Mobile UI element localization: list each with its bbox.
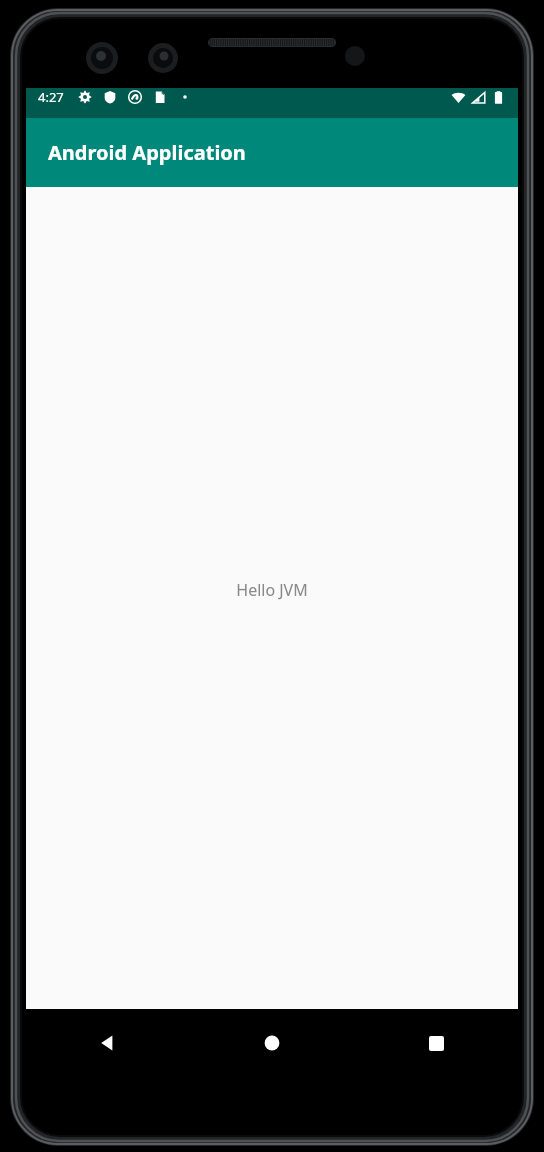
staticText: Android Application <box>48 139 246 166</box>
button[interactable]: Android Application <box>26 118 518 187</box>
button[interactable]: Back <box>26 1009 190 1077</box>
staticText: 4:27 <box>38 88 64 106</box>
staticText: Hello JVM <box>236 579 308 601</box>
button[interactable]: Home <box>190 1009 354 1077</box>
button[interactable]: Recent apps <box>354 1009 518 1077</box>
